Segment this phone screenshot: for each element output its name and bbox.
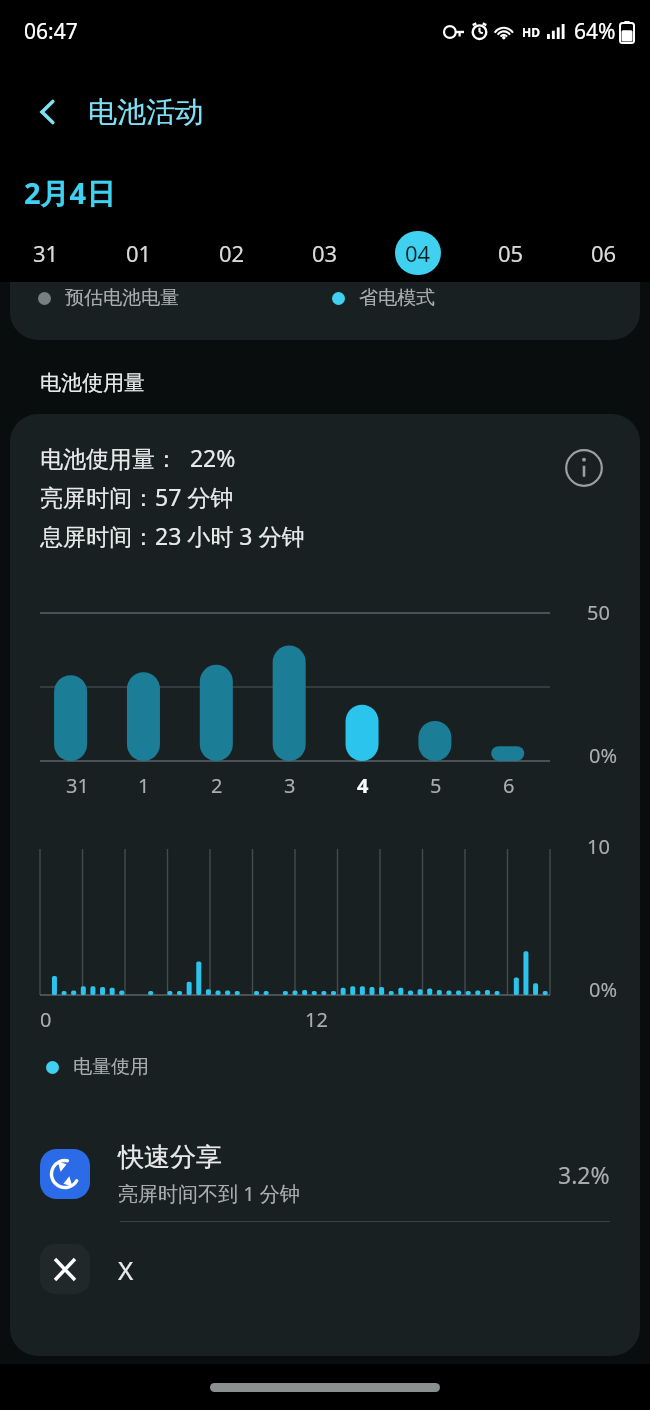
staticText: 64% [574,17,616,46]
staticText: HD [522,24,540,40]
button[interactable]: 快速分享 [10,1127,640,1221]
staticText: 04 [405,238,431,268]
staticText: 4 [357,772,369,799]
staticText: 06:47 [24,17,78,46]
staticText: 亮屏时间不到 1 分钟 [118,1180,300,1207]
staticText: 电池使用量 [40,370,145,396]
staticText: 电量使用 [73,1055,149,1079]
button[interactable]: Info [558,442,610,494]
button[interactable]: X [10,1222,640,1316]
staticText: 2 [211,772,223,799]
staticText: 12 [305,1006,328,1033]
staticText: 预估电池电量 [65,286,179,310]
staticText: 0% [589,976,618,1003]
button[interactable]: Back [20,84,76,140]
button[interactable]: 02 [185,224,278,282]
staticText: 息屏时间：23 小时 3 分钟 [40,520,305,551]
staticText: 10 [587,833,610,860]
staticText: 3 [284,772,296,799]
staticText: 03 [312,238,338,268]
staticText: 2月4日 [24,173,116,213]
staticText: 01 [126,238,152,268]
staticText: 31 [33,238,59,268]
staticText: 5 [430,772,442,799]
button[interactable]: 03 [278,224,371,282]
button[interactable]: 05 [464,224,557,282]
button[interactable]: 预估电池电量 [10,282,640,340]
staticText: 06 [591,238,617,268]
button[interactable]: 31 [0,224,92,282]
staticText: 50 [587,599,610,626]
button[interactable]: 04 [371,224,464,282]
staticText: 31 [66,772,89,799]
button[interactable]: 06 [557,224,650,282]
staticText: 电池使用量： 22% [40,442,236,473]
staticText: 02 [219,238,245,268]
staticText: 亮屏时间：57 分钟 [40,481,234,512]
staticText: 3.2% [558,1159,610,1190]
staticText: 省电模式 [359,286,435,310]
staticText: 0% [589,742,618,769]
staticText: 1 [138,772,150,799]
staticText: 快速分享 [118,1141,222,1174]
staticText: 0 [40,1006,52,1033]
button[interactable]: 01 [92,224,185,282]
staticText: 6 [503,772,515,799]
staticText: X [118,1252,134,1287]
staticText: 电池活动 [88,94,204,131]
staticText: 05 [498,238,524,268]
